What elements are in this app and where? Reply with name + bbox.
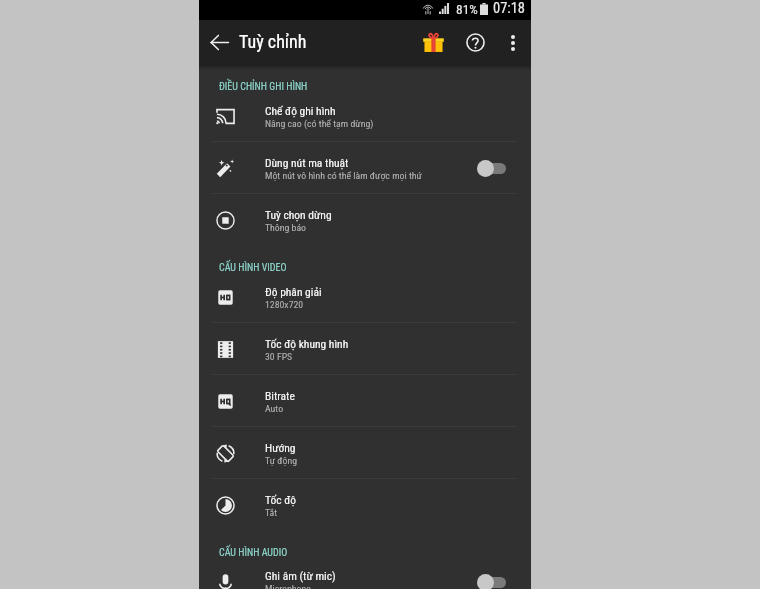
staticText: 07:18 [493,0,526,17]
staticText: Thông báo [265,222,307,233]
staticText: CẤU HÌNH AUDIO [219,547,288,559]
staticText: Nâng cao (có thể tạm dừng) [265,118,374,129]
staticText: Ghi âm (từ mic) [265,569,336,582]
button[interactable]: Chế độ ghi hình [199,90,531,142]
staticText: Tự động [265,455,297,466]
staticText: CẤU HÌNH VIDEO [219,262,287,274]
button[interactable]: More options [495,20,531,65]
staticText: Tuỳ chọn dừng [265,208,332,221]
staticText: Độ phân giải [265,285,322,298]
button[interactable]: Help [455,20,495,65]
staticText: 1280x720 [265,299,304,310]
staticText: Chế độ ghi hình [265,104,336,117]
button[interactable]: Back [199,20,239,65]
button[interactable]: Tốc độ khung hình [199,323,531,375]
button[interactable]: Hướng [199,427,531,479]
staticText: Tốc độ khung hình [265,337,349,350]
button[interactable]: Toggle Ghi âm (từ mic) [479,566,531,589]
staticText: Tuỳ chỉnh [239,31,307,52]
staticText: Tốc độ [265,493,297,506]
staticText: Hướng [265,441,296,454]
staticText: Microphone [265,583,311,589]
staticText: Một nút vô hình có thể làm được mọi thứ [265,170,422,181]
button[interactable]: Tuỳ chọn dừng [199,194,531,246]
button[interactable]: Độ phân giải [199,271,531,323]
staticText: 81% [456,1,478,17]
staticText: 30 FPS [265,351,293,362]
staticText: Bitrate [265,389,295,402]
button[interactable]: Dùng nút ma thuật [199,142,531,194]
button[interactable]: Bitrate [199,375,531,427]
staticText: Dùng nút ma thuật [265,156,349,169]
button[interactable]: Tốc độ [199,479,531,531]
staticText: ĐIỀU CHỈNH GHI HÌNH [219,81,308,93]
staticText: Tắt [265,507,278,518]
staticText: Auto [265,403,284,414]
button[interactable]: Toggle Dùng nút ma thuật [479,142,531,194]
button[interactable]: Ghi âm (từ mic) [199,556,531,588]
button[interactable]: Gift [415,20,455,65]
